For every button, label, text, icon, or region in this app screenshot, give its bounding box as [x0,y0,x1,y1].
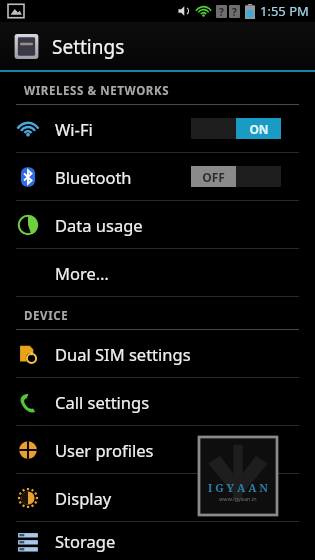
button[interactable]: Storage [0,522,315,560]
staticText: Data usage [55,214,143,236]
staticText: OFF [202,169,225,185]
button[interactable]: Display [0,474,315,521]
button[interactable]: Bluetooth [0,153,315,200]
staticText: Bluetooth [55,166,132,188]
staticText: Settings [52,34,125,60]
staticText: ON [249,121,269,137]
staticText: www.igyaan.in [219,495,257,502]
button[interactable]: Dual SIM settings [0,330,315,377]
staticText: DEVICE [24,308,69,324]
button[interactable]: Wi-Fi [0,105,315,152]
staticText: Wi-Fi [55,118,93,140]
staticText: WIRELESS & NETWORKS [24,83,170,99]
button[interactable]: More… [0,249,315,296]
staticText: More… [55,262,109,284]
staticText: Dual SIM settings [55,343,191,365]
staticText: Storage [55,530,116,552]
staticText: ? [232,5,237,18]
staticText: Call settings [55,391,150,413]
button[interactable]: User profiles [0,426,315,473]
button[interactable]: Turn off [191,118,281,139]
staticText: I G Y A A N [208,480,269,495]
button[interactable]: Call settings [0,378,315,425]
staticText: Display [55,487,112,509]
button[interactable]: Turn on [191,166,281,187]
staticText: ? [219,5,224,18]
button[interactable]: Settings [0,22,315,70]
staticText: User profiles [55,439,154,461]
button[interactable]: Data usage [0,201,315,248]
staticText: 1:55 PM [260,2,309,20]
